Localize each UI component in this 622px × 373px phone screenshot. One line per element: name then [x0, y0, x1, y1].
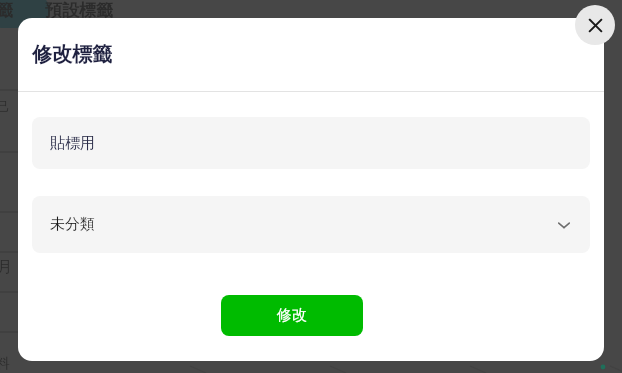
button[interactable]: 修改 — [221, 295, 363, 336]
staticText: 修改標籤 — [32, 42, 112, 67]
button[interactable]: Close — [575, 5, 615, 45]
staticText: 貼標用 — [50, 134, 95, 153]
staticText: 己 — [0, 98, 10, 114]
staticText: 未分類 — [50, 215, 556, 234]
button[interactable]: 貼標用 — [32, 117, 590, 169]
staticText: 籤 — [0, 0, 13, 21]
staticText: 料 — [0, 355, 10, 373]
button[interactable]: 未分類 — [32, 196, 590, 253]
staticText: 修改 — [277, 306, 307, 325]
staticText: 預設標籤 — [45, 0, 113, 21]
staticText: 月 — [0, 258, 12, 277]
